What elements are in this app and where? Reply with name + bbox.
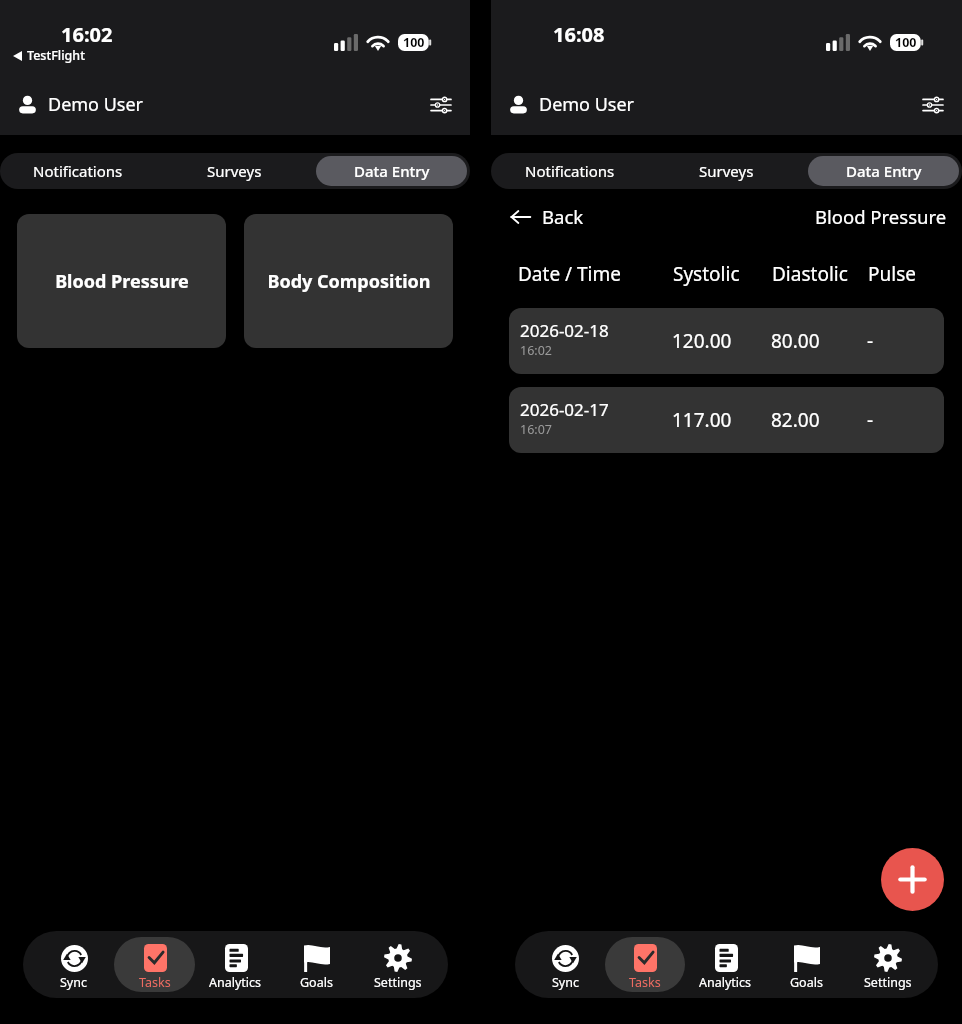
staticText: Pulse: [868, 261, 916, 287]
button[interactable]: Notifications: [0, 153, 156, 189]
staticText: Blood Pressure: [55, 269, 189, 294]
button[interactable]: Data Entry: [808, 156, 959, 186]
staticText: 16:02: [61, 21, 113, 48]
staticText: Date / Time: [518, 261, 673, 287]
staticText: 100: [895, 34, 917, 51]
button[interactable]: Sync: [33, 937, 114, 992]
button[interactable]: Surveys: [156, 153, 313, 189]
staticText: Sync: [60, 974, 87, 991]
staticText: Demo User: [539, 92, 635, 117]
staticText: TestFlight: [27, 47, 85, 64]
button[interactable]: Blood Pressure: [17, 214, 226, 348]
button[interactable]: Sync: [525, 937, 605, 992]
staticText: Goals: [300, 974, 333, 991]
staticText: Systolic: [673, 261, 772, 287]
staticText: 117.00: [672, 407, 771, 433]
staticText: 80.00: [771, 328, 867, 354]
staticText: Sync: [552, 974, 579, 991]
staticText: 2026-02-17: [520, 398, 609, 421]
staticText: Surveys: [699, 161, 754, 181]
staticText: -: [867, 328, 874, 354]
staticText: Diastolic: [772, 261, 868, 287]
staticText: Notifications: [525, 161, 615, 181]
button[interactable]: Body Composition: [244, 214, 453, 348]
staticText: Tasks: [139, 974, 171, 991]
button[interactable]: Notifications: [491, 153, 648, 189]
button[interactable]: Data Entry: [316, 156, 467, 186]
button[interactable]: Goals: [766, 937, 847, 992]
staticText: Data Entry: [354, 161, 430, 181]
staticText: Settings: [864, 974, 912, 991]
staticText: Body Composition: [267, 269, 431, 294]
staticText: 120.00: [672, 328, 771, 354]
staticText: 2026-02-18: [520, 319, 609, 342]
button[interactable]: Settings: [847, 937, 928, 992]
staticText: Notifications: [33, 161, 123, 181]
button[interactable]: Back: [510, 204, 584, 229]
staticText: Demo User: [48, 92, 144, 117]
staticText: 16:07: [520, 421, 552, 438]
button[interactable]: 2026-02-18: [509, 308, 944, 374]
button[interactable]: Goals: [276, 937, 357, 992]
staticText: Analytics: [699, 974, 752, 991]
staticText: Tasks: [629, 974, 661, 991]
button[interactable]: Surveys: [648, 153, 805, 189]
button[interactable]: Tasks: [605, 937, 685, 992]
staticText: 16:08: [553, 21, 605, 48]
button[interactable]: Analytics: [195, 937, 276, 992]
staticText: Settings: [374, 974, 422, 991]
button[interactable]: Settings: [425, 89, 457, 121]
staticText: Data Entry: [846, 161, 922, 181]
button[interactable]: Settings: [917, 89, 949, 121]
button[interactable]: 2026-02-17: [509, 387, 944, 453]
staticText: -: [867, 407, 874, 433]
staticText: Surveys: [207, 161, 262, 181]
button[interactable]: Settings: [357, 937, 438, 992]
staticText: Goals: [790, 974, 823, 991]
staticText: 100: [403, 34, 425, 51]
button[interactable]: Analytics: [685, 937, 766, 992]
button[interactable]: Tasks: [114, 937, 195, 992]
staticText: Blood Pressure: [815, 204, 947, 229]
button[interactable]: Add: [881, 848, 944, 911]
staticText: 16:02: [520, 342, 552, 359]
staticText: Back: [542, 204, 584, 229]
staticText: Analytics: [209, 974, 262, 991]
staticText: 82.00: [771, 407, 867, 433]
